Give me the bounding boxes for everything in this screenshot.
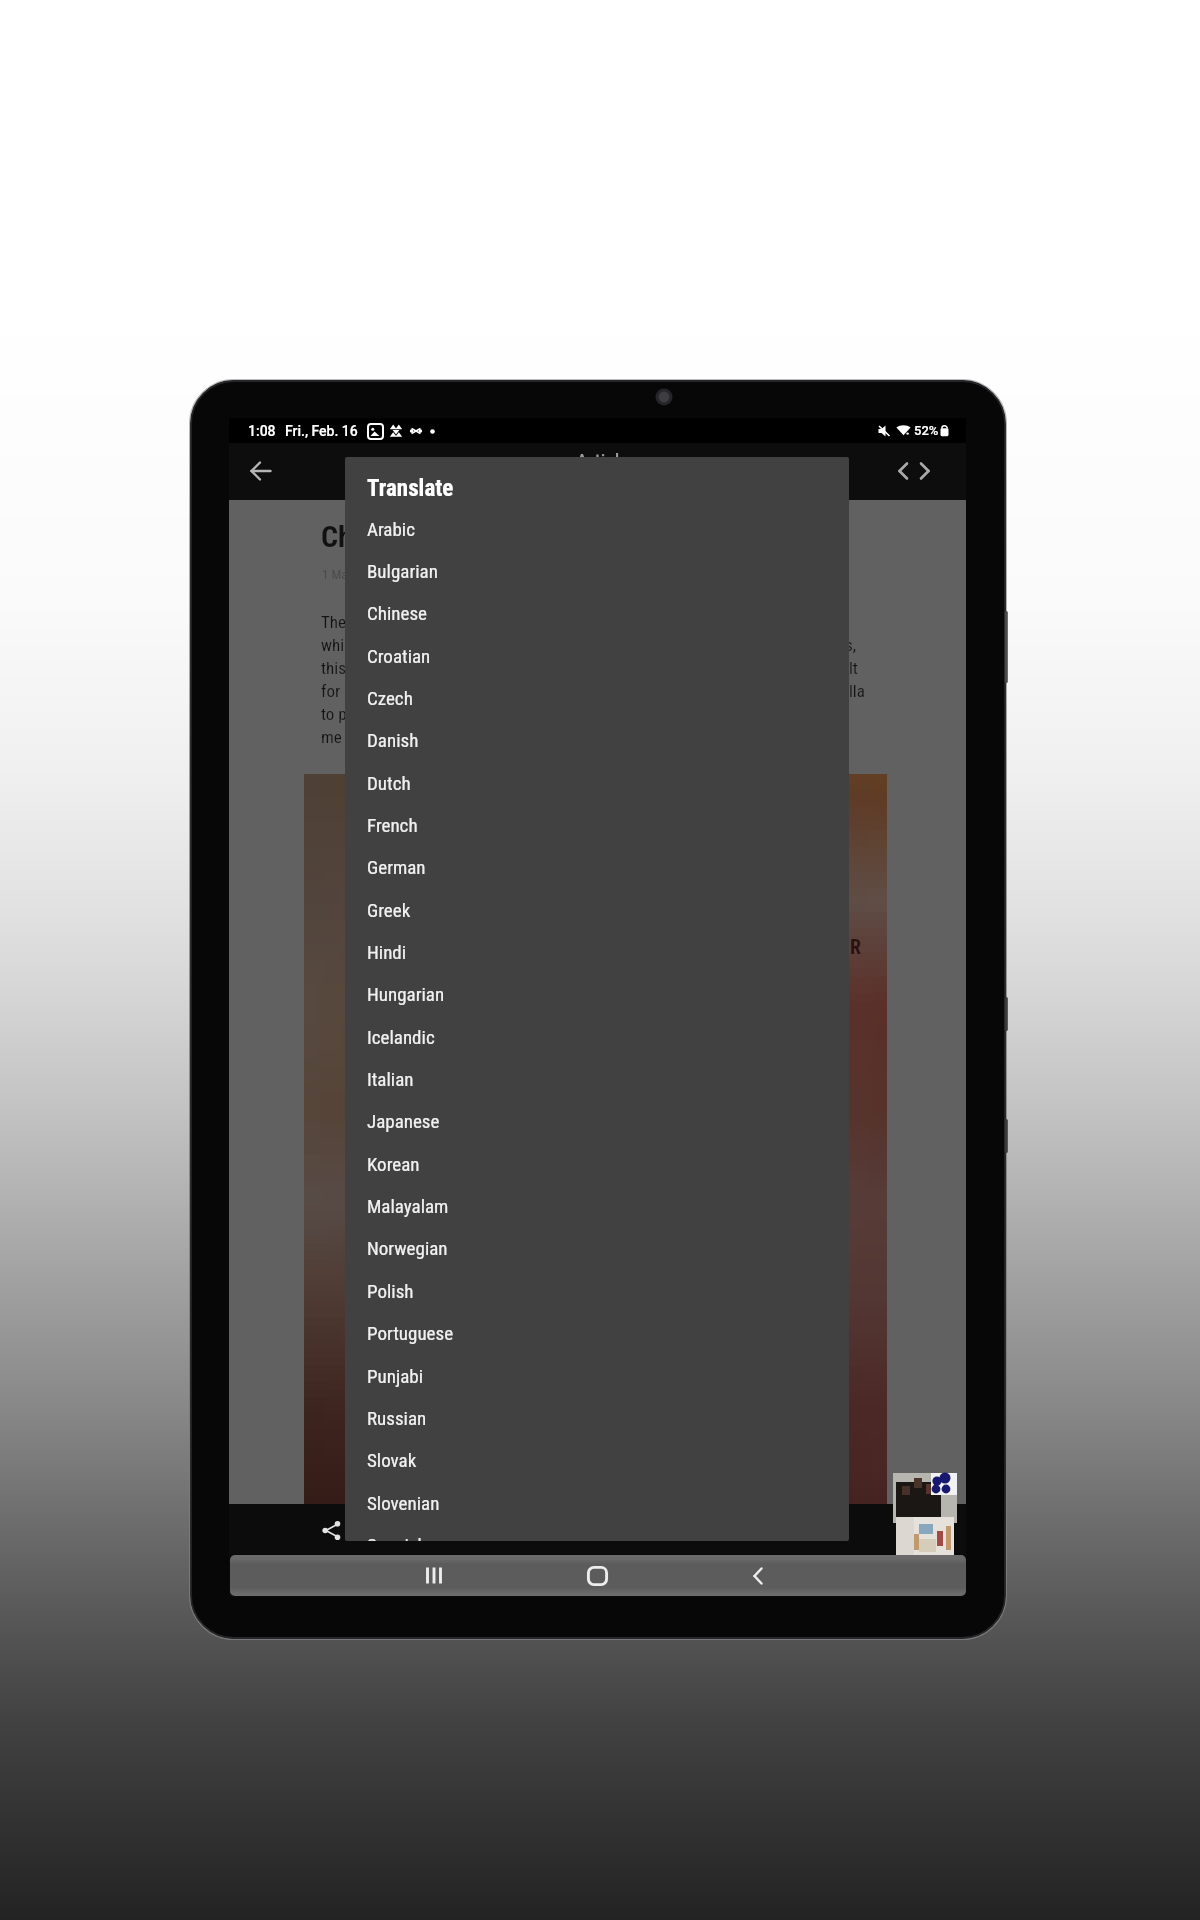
- staticText: Italian: [367, 1068, 414, 1090]
- staticText: Arabic: [367, 518, 415, 540]
- staticText: Spanish: [367, 1534, 427, 1541]
- staticText: Malayalam: [367, 1195, 449, 1217]
- button[interactable]: Malayalam: [345, 1185, 849, 1227]
- staticText: Norwegian: [367, 1237, 448, 1259]
- staticText: R: [850, 935, 862, 958]
- staticText: Dutch: [367, 772, 411, 794]
- staticText: 52%: [914, 423, 939, 438]
- staticText: Greek: [367, 899, 411, 921]
- button[interactable]: Bulgarian: [345, 550, 849, 592]
- button[interactable]: Korean: [345, 1143, 849, 1185]
- button[interactable]: Norwegian: [345, 1227, 849, 1269]
- button[interactable]: Home: [576, 1555, 618, 1596]
- button[interactable]: Hindi: [345, 931, 849, 973]
- staticText: Hindi: [367, 941, 407, 963]
- staticText: this: [321, 658, 346, 678]
- staticText: illa: [845, 681, 865, 701]
- button[interactable]: Next page: [906, 452, 944, 490]
- button[interactable]: German: [345, 846, 849, 888]
- staticText: Slovak: [367, 1449, 417, 1471]
- staticText: Punjabi: [367, 1365, 424, 1387]
- staticText: 1 March 2023: [322, 567, 393, 582]
- staticText: Translate: [367, 475, 454, 502]
- staticText: Czech: [367, 687, 413, 709]
- staticText: Hungarian: [367, 983, 445, 1005]
- button[interactable]: Back: [737, 1555, 779, 1596]
- staticText: to p: [321, 704, 347, 724]
- staticText: ilt: [845, 658, 858, 678]
- button[interactable]: Croatian: [345, 635, 849, 677]
- staticText: whi: [321, 635, 345, 655]
- staticText: Danish: [367, 729, 419, 751]
- button[interactable]: Share: [310, 1509, 352, 1551]
- button[interactable]: Portuguese: [345, 1312, 849, 1354]
- button[interactable]: Icelandic: [345, 1016, 849, 1058]
- button[interactable]: Polish: [345, 1270, 849, 1312]
- staticText: Article: [576, 450, 629, 471]
- staticText: Christmas tree: [321, 519, 498, 554]
- button[interactable]: Previous page: [884, 452, 922, 490]
- button[interactable]: Chinese: [345, 592, 849, 634]
- staticText: Fri., Feb. 16: [285, 423, 358, 439]
- button[interactable]: Back: [240, 450, 282, 492]
- staticText: me: [321, 727, 342, 747]
- button[interactable]: Russian: [345, 1397, 849, 1439]
- button[interactable]: Japanese: [345, 1100, 849, 1142]
- staticText: German: [367, 856, 426, 878]
- staticText: Japanese: [367, 1110, 440, 1132]
- button[interactable]: Punjabi: [345, 1355, 849, 1397]
- staticText: French: [367, 814, 418, 836]
- staticText: Portuguese: [367, 1322, 454, 1344]
- button[interactable]: Dutch: [345, 762, 849, 804]
- button[interactable]: Spanish: [345, 1524, 849, 1541]
- staticText: for: [321, 681, 341, 701]
- button[interactable]: French: [345, 804, 849, 846]
- button[interactable]: Recent apps: [413, 1555, 455, 1596]
- button[interactable]: Arabic: [345, 508, 849, 550]
- button[interactable]: Italian: [345, 1058, 849, 1100]
- button[interactable]: Greek: [345, 889, 849, 931]
- staticText: Russian: [367, 1407, 427, 1429]
- staticText: Icelandic: [367, 1026, 435, 1048]
- button[interactable]: Slovenian: [345, 1482, 849, 1524]
- staticText: Croatian: [367, 645, 431, 667]
- button[interactable]: Danish: [345, 719, 849, 761]
- button[interactable]: Hungarian: [345, 973, 849, 1015]
- staticText: 1:08: [248, 423, 276, 439]
- button[interactable]: Slovak: [345, 1439, 849, 1481]
- staticText: Chinese: [367, 602, 427, 624]
- button[interactable]: Czech: [345, 677, 849, 719]
- staticText: s,: [845, 635, 857, 655]
- staticText: Korean: [367, 1153, 420, 1175]
- staticText: Bulgarian: [367, 560, 438, 582]
- staticText: Slovenian: [367, 1492, 440, 1514]
- staticText: The: [321, 612, 347, 632]
- staticText: Polish: [367, 1280, 414, 1302]
